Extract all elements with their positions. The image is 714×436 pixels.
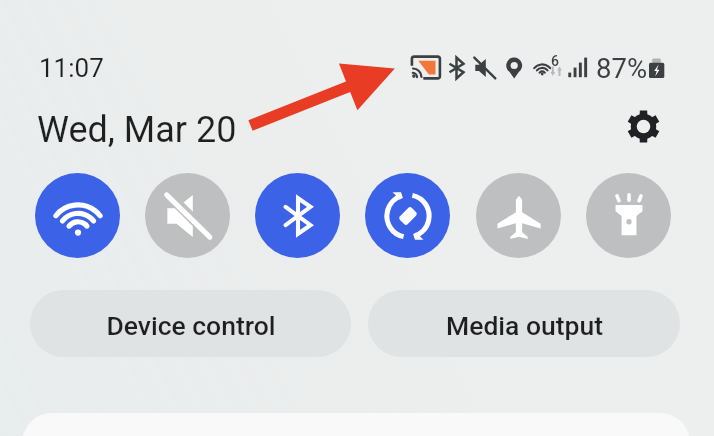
staticText: 11:07 [39,53,104,83]
button[interactable]: Device control [30,290,351,357]
button[interactable]: Wi-Fi [35,173,120,258]
button[interactable]: Flashlight [586,173,671,258]
staticText: Media output [446,310,603,341]
button[interactable]: Mute [145,173,230,258]
staticText: 87% [596,52,648,84]
button[interactable]: Airplane mode [476,173,561,258]
button[interactable]: Media output [368,290,680,357]
button[interactable]: Auto rotate [365,173,450,258]
button[interactable]: Settings [615,98,671,154]
button[interactable]: Bluetooth [255,173,340,258]
staticText: Device control [106,310,276,341]
staticText: 6 [551,53,559,69]
staticText: Wed, Mar 20 [37,109,237,151]
